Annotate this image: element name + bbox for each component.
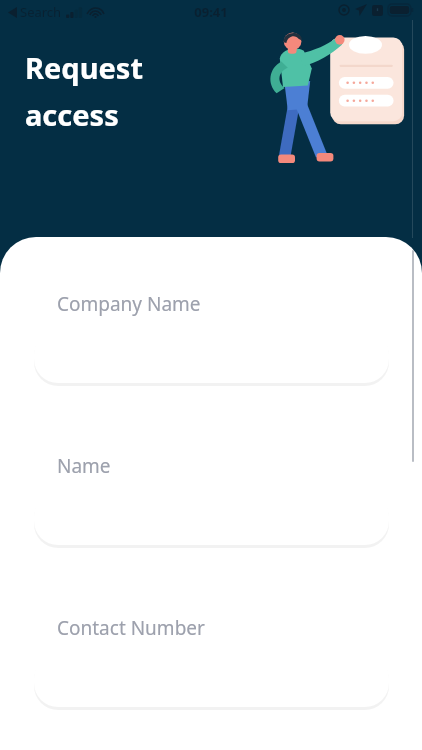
staticText: Company Name bbox=[57, 291, 201, 317]
staticText: Request bbox=[25, 48, 143, 87]
staticText: Contact Number bbox=[57, 615, 205, 641]
staticText: Name bbox=[57, 453, 111, 479]
staticText: access bbox=[25, 95, 119, 134]
staticText: Search bbox=[20, 3, 62, 21]
other: Request access illustration bbox=[255, 22, 415, 177]
staticText: 09:41 bbox=[194, 3, 228, 21]
